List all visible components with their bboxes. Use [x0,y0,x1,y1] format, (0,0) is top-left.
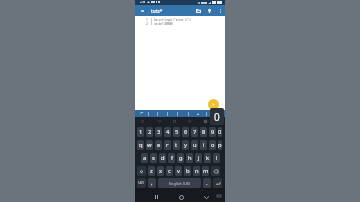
staticText: s [152,154,155,162]
button[interactable]: Keyboard tool 2 [157,119,161,123]
button[interactable]: 0 [218,127,222,137]
staticText: o [211,141,215,149]
button[interactable]: h [186,153,193,163]
button[interactable]: 9 [209,127,216,137]
button[interactable]: Keyboard tool 4 [187,119,191,123]
button[interactable]: p [218,140,222,150]
button[interactable]: a [141,153,148,163]
button[interactable]: y [182,140,189,150]
button[interactable]: l [213,153,220,163]
staticText: !#1 [138,180,145,186]
staticText: 8 [202,128,206,136]
staticText: p [218,141,222,149]
button[interactable]: 2 [146,127,153,137]
button[interactable]: Home [175,191,187,202]
button[interactable]: 5 [173,127,180,137]
button[interactable]: m [202,166,209,176]
staticText: . [206,179,208,187]
button[interactable]: Keyboard tool 1 [140,119,144,123]
button[interactable]: x [157,166,164,176]
button[interactable]: i [200,140,207,150]
button[interactable]: Back [200,191,212,202]
button[interactable]: 8 [200,127,207,137]
staticText: l [216,154,218,162]
button[interactable]: b [184,166,191,176]
staticText: , [151,179,153,187]
staticText: j [198,154,200,162]
button[interactable]: Run [208,99,219,110]
button[interactable]: Navigation menu [137,5,148,16]
staticText: e [157,141,161,149]
staticText: 4 [166,128,170,136]
staticText: English (US) [169,181,191,186]
staticText: 2 [146,22,148,26]
button[interactable]: o [209,140,216,150]
button[interactable]: f [168,153,175,163]
button[interactable]: Backspace [211,166,220,176]
staticText: r [166,141,169,149]
staticText: f [171,154,173,162]
staticText: c [168,167,171,175]
staticText: km=int(input("enter k")) [154,18,192,22]
button[interactable]: Hide keyboard [214,191,224,201]
staticText: n [195,167,199,175]
button[interactable]: r [164,140,171,150]
staticText: 1 [146,18,148,22]
button[interactable]: Open file [193,5,204,16]
button[interactable]: j [195,153,202,163]
button[interactable]: 6 [182,127,189,137]
staticText: 0 [218,128,222,136]
staticText: h [188,154,192,162]
staticText: w [147,141,152,149]
button[interactable]: q [137,140,144,150]
button[interactable]: Space [158,178,201,188]
staticText: v [177,167,180,175]
button[interactable]: t [173,140,180,150]
staticText: 1 [139,128,143,136]
button[interactable]: Keyboard tool 3 [172,119,176,123]
button[interactable]: c [166,166,173,176]
button[interactable]: v [175,166,182,176]
staticText: 0 [214,110,220,124]
staticText: g [179,154,183,162]
button[interactable]: z [148,166,155,176]
button[interactable]: Symbols [137,178,146,188]
staticText: y [184,141,187,149]
button[interactable]: Keyboard tool 5 [203,119,207,123]
button[interactable]: Recent apps [150,191,162,202]
button[interactable]: e [155,140,162,150]
staticText: k [206,154,210,162]
staticText: t [175,141,178,149]
staticText: m [203,167,209,175]
staticText: i [203,141,205,149]
button[interactable]: 7 [191,127,198,137]
staticText: 3 [157,128,161,136]
staticText: b [186,167,190,175]
button[interactable]: Enter [213,178,222,188]
staticText: q [139,141,143,149]
staticText: z [150,167,153,175]
staticText: cm=km*100000 [154,22,173,26]
button[interactable]: n [193,166,200,176]
button[interactable]: s [150,153,157,163]
button[interactable]: d [159,153,166,163]
button[interactable]: , [148,178,156,188]
staticText: 5 [175,128,179,136]
button[interactable]: 4 [164,127,171,137]
button[interactable]: Shift [137,166,146,176]
staticText: tuts* [151,8,163,14]
button[interactable]: u [191,140,198,150]
staticText: 9 [211,128,215,136]
staticText: u [193,141,197,149]
staticText: 7 [193,128,197,136]
button[interactable]: . [203,178,211,188]
button[interactable]: More options [215,5,225,16]
button[interactable]: Hints [204,5,215,16]
staticText: d [161,154,165,162]
staticText: a [143,154,147,162]
button[interactable]: k [204,153,211,163]
button[interactable]: 1 [137,127,144,137]
button[interactable]: g [177,153,184,163]
button[interactable]: 3 [155,127,162,137]
button[interactable]: w [146,140,153,150]
